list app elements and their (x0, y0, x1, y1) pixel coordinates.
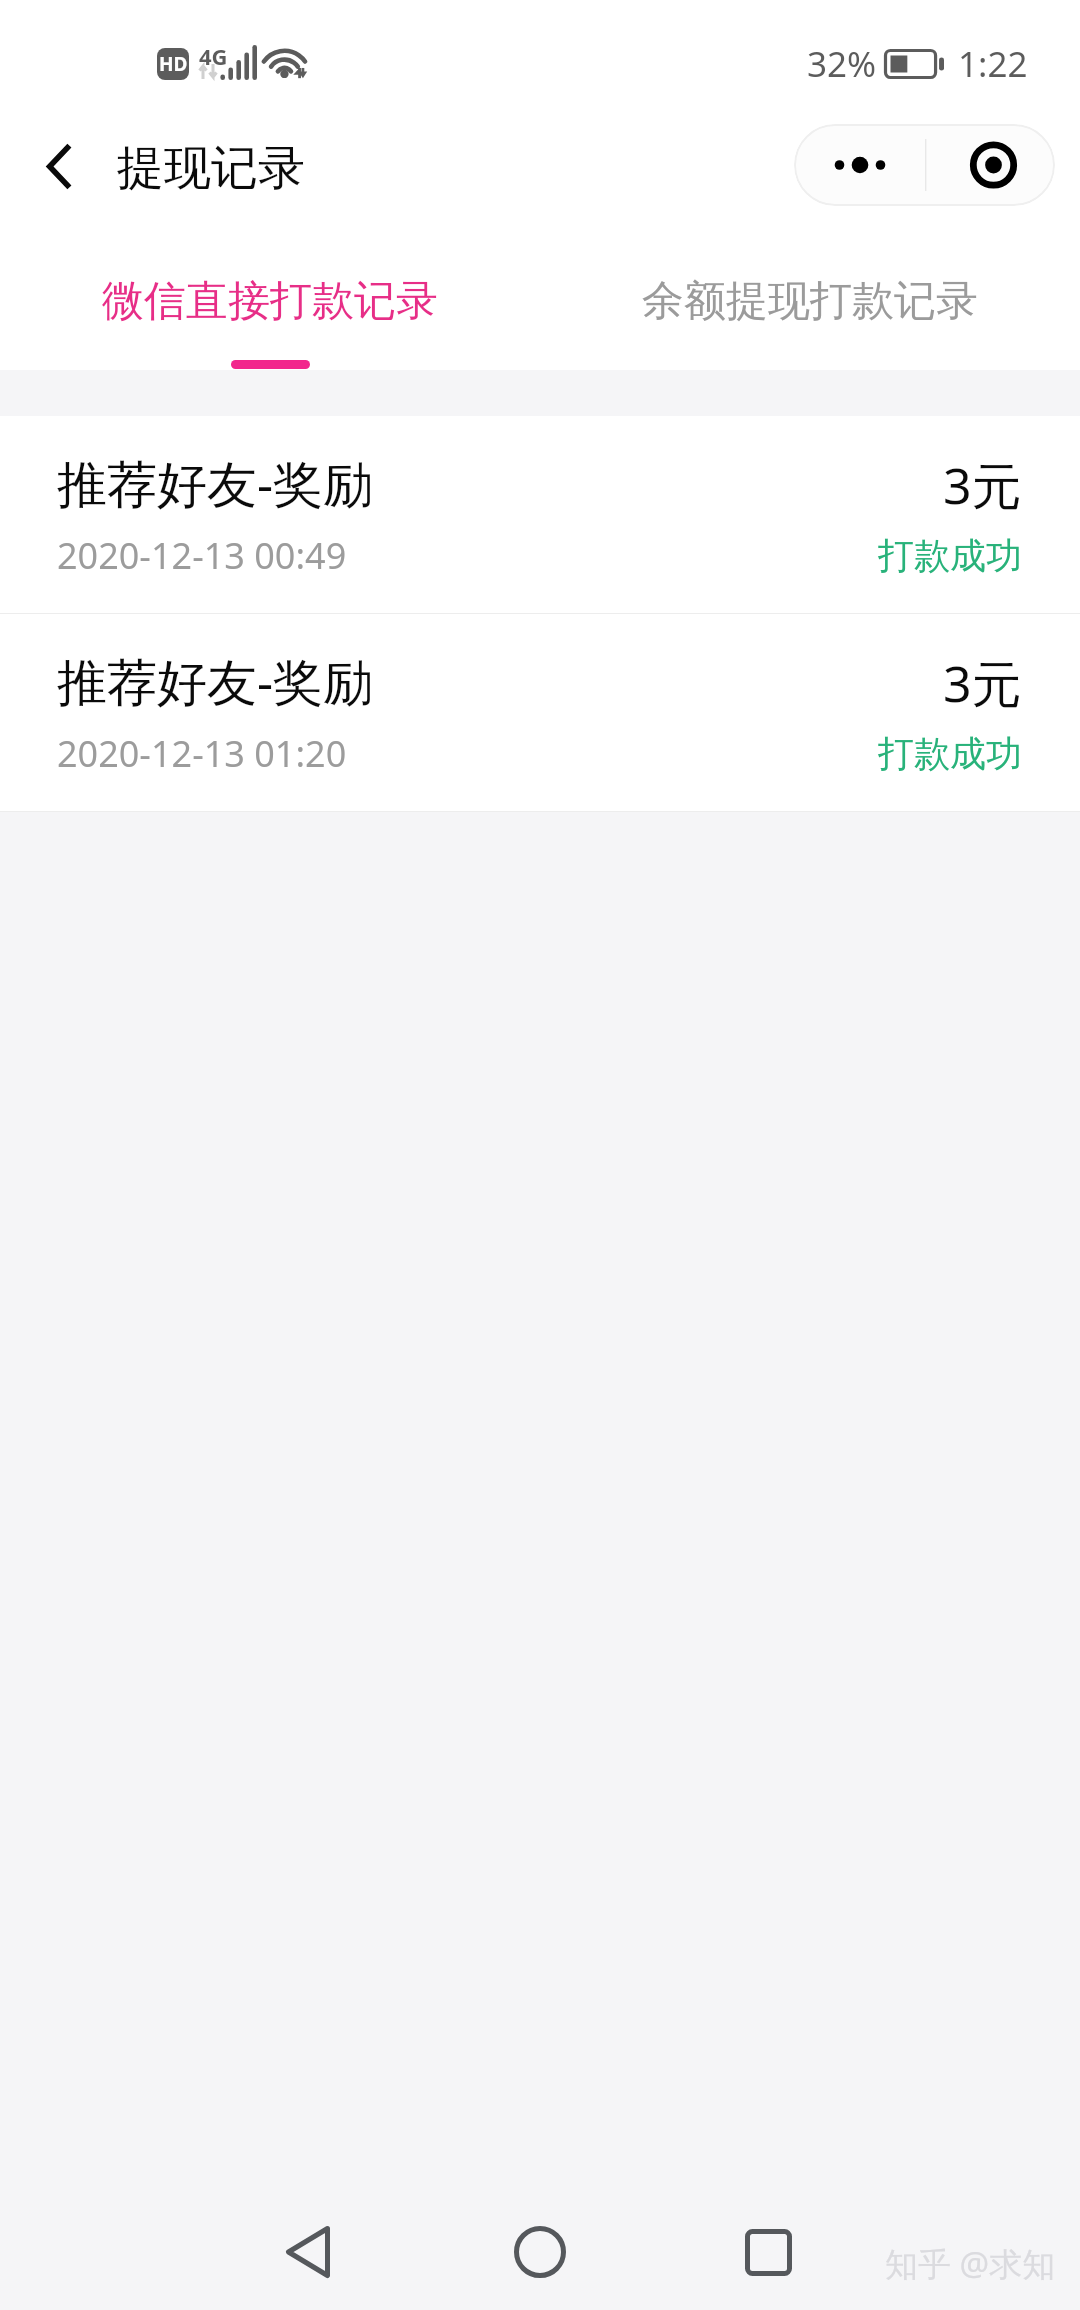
staticText: 打款成功 (878, 731, 1022, 776)
staticText: 32% (807, 40, 877, 88)
staticText: 2020-12-13 01:20 (57, 729, 347, 778)
staticText: 知乎 @求知 (885, 2241, 1080, 2286)
staticText: 推荐好友-奖励 (57, 449, 374, 517)
staticText: 提现记录 (117, 139, 305, 198)
staticText: 推荐好友-奖励 (57, 647, 374, 715)
button[interactable]: 余额提现打款记录 (540, 243, 1080, 370)
staticText: HD (159, 51, 188, 77)
button[interactable]: 微信直接打款记录 (0, 243, 540, 370)
staticText: 4G (199, 41, 228, 71)
button[interactable]: Back (248, 2194, 368, 2310)
staticText: 3元 (943, 451, 1022, 519)
staticText: 1:22 (958, 40, 1028, 88)
staticText: 余额提现打款记录 (642, 275, 978, 328)
button[interactable]: 推荐好友-奖励 (0, 416, 1080, 613)
button[interactable] (794, 124, 1055, 206)
staticText: 打款成功 (878, 533, 1022, 578)
button[interactable]: Recent apps (708, 2194, 828, 2310)
staticText: 3元 (943, 649, 1022, 717)
staticText: 2020-12-13 00:49 (57, 531, 347, 580)
staticText: 微信直接打款记录 (102, 275, 438, 328)
button[interactable]: Home (480, 2194, 600, 2310)
button[interactable]: 推荐好友-奖励 (0, 614, 1080, 811)
button[interactable]: Back (12, 111, 107, 221)
